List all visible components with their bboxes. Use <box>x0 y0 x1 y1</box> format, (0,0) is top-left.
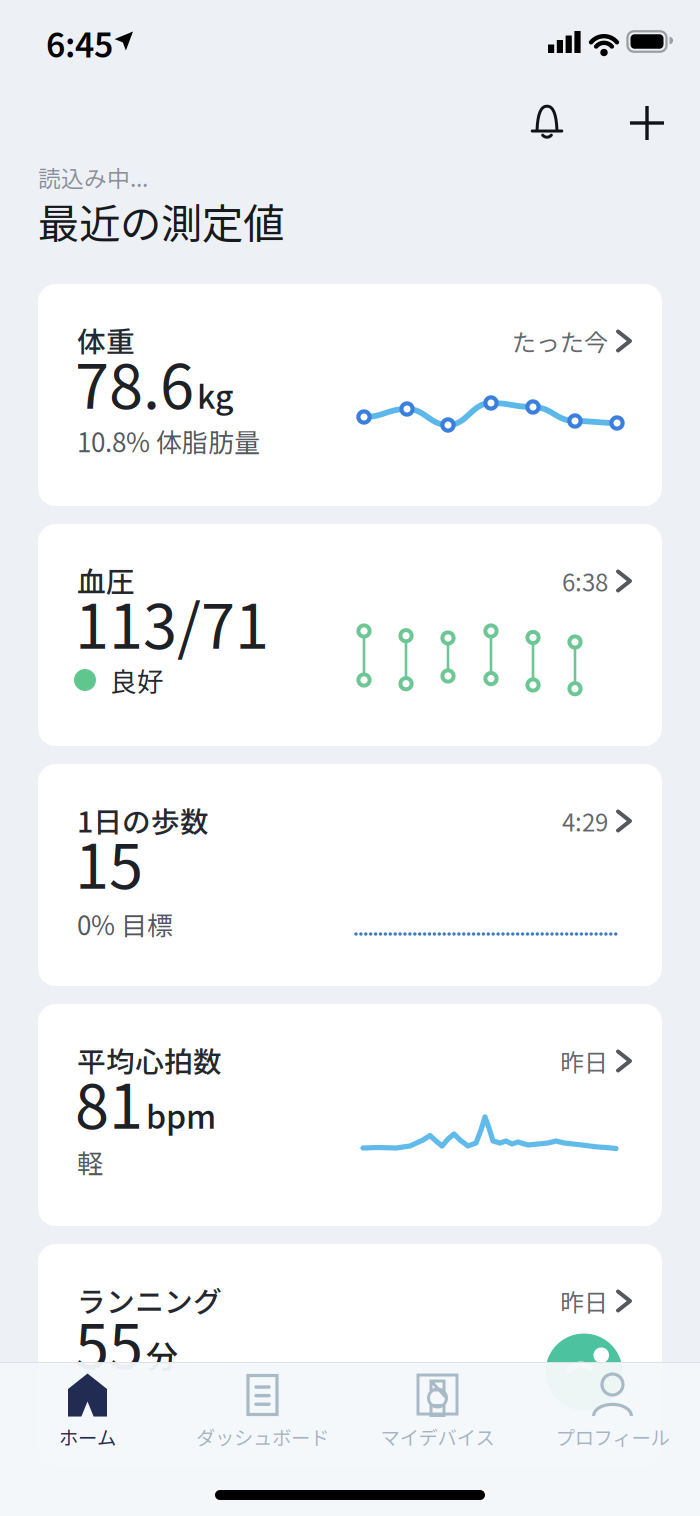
button[interactable]: 追加 <box>630 106 664 140</box>
button[interactable]: プロフィール <box>525 1369 699 1455</box>
staticText: 最近の測定値 <box>38 191 284 251</box>
staticText: 81 <box>75 1058 143 1146</box>
staticText: bpm <box>146 1092 216 1138</box>
staticText: 55 <box>75 1298 143 1386</box>
staticText: 6:38 <box>562 564 608 598</box>
staticText: マイデバイス <box>380 1422 494 1450</box>
staticText: 分 <box>146 1332 178 1378</box>
button[interactable]: 体重 <box>38 284 662 506</box>
staticText: 10.8% 体脂肪量 <box>77 422 260 460</box>
staticText: 0% 目標 <box>77 905 173 943</box>
staticText: 昨日 <box>560 1044 608 1078</box>
staticText: 4:29 <box>562 804 608 838</box>
staticText: 1日の歩数 <box>77 799 209 841</box>
staticText: 読込み中... <box>38 161 148 193</box>
staticText: たった今 <box>512 324 608 358</box>
staticText: プロフィール <box>555 1422 669 1450</box>
button[interactable]: 平均心拍数 <box>38 1004 662 1226</box>
staticText: 15 <box>75 818 143 906</box>
staticText: 体重 <box>77 319 135 361</box>
staticText: ランニング <box>77 1279 222 1321</box>
button[interactable]: 血圧 <box>38 524 662 746</box>
staticText: ダッシュボード <box>196 1422 329 1450</box>
button[interactable]: 通知 <box>531 104 563 140</box>
staticText: 78.6 <box>75 338 194 426</box>
button[interactable]: 1日の歩数 <box>38 764 662 986</box>
staticText: 昨日 <box>560 1284 608 1318</box>
staticText: 良好 <box>110 661 164 699</box>
staticText: 6:45 <box>46 19 113 67</box>
staticText: 軽 <box>77 1143 103 1181</box>
button[interactable]: ダッシュボード <box>175 1369 349 1455</box>
staticText: ホーム <box>59 1422 116 1450</box>
staticText: 平均心拍数 <box>77 1039 222 1081</box>
staticText: kg <box>197 372 233 418</box>
staticText: 血圧 <box>77 559 135 601</box>
staticText: 113/71 <box>75 578 269 666</box>
button[interactable]: マイデバイス <box>350 1369 524 1455</box>
button[interactable]: ランニング <box>38 1244 662 1466</box>
button[interactable]: ホーム <box>0 1369 174 1455</box>
